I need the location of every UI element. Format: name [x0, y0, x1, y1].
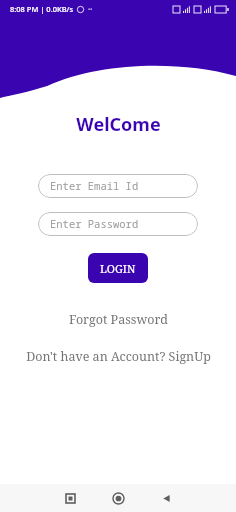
staticText: LOGIN — [100, 261, 136, 276]
button[interactable]: Password field — [38, 212, 198, 236]
staticText: 8:08 PM | 0.0KB/s — [10, 4, 74, 14]
button[interactable]: Email address field — [38, 174, 198, 198]
staticText: Don't have an Account? SignUp — [26, 348, 211, 365]
staticText: Enter Password — [50, 217, 139, 231]
button[interactable]: Recent apps — [46, 484, 94, 512]
staticText: Forgot Password — [69, 311, 168, 328]
staticText: Enter Email Id — [50, 179, 139, 193]
button[interactable]: Back — [142, 484, 190, 512]
button[interactable]: LOGIN — [88, 253, 148, 283]
button[interactable]: Forgot Password — [59, 307, 178, 332]
staticText: WelCome — [76, 112, 161, 137]
button[interactable]: Home — [94, 484, 142, 512]
button[interactable]: Don't have an Account? SignUp — [16, 344, 221, 369]
